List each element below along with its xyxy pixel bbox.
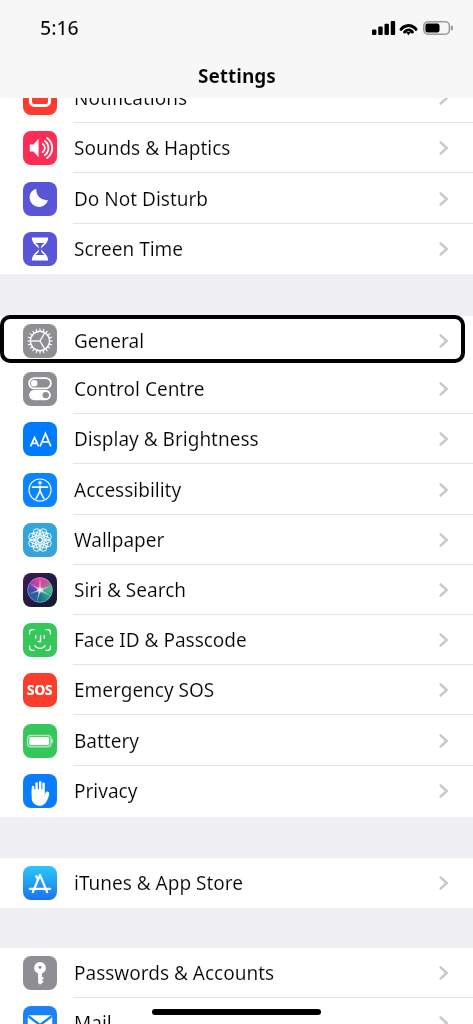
button[interactable]: Screen Time: [0, 224, 473, 274]
staticText: Sounds & Haptics: [74, 135, 231, 161]
button[interactable]: SOS: [0, 665, 473, 715]
button[interactable]: Privacy: [0, 766, 473, 816]
staticText: Siri & Search: [74, 577, 187, 603]
button[interactable]: Battery: [0, 716, 473, 766]
button[interactable]: Siri & Search: [0, 565, 473, 615]
staticText: Face ID & Passcode: [74, 627, 247, 653]
button[interactable]: Do Not Disturb: [0, 174, 473, 224]
button[interactable]: Wallpaper: [0, 515, 473, 565]
button[interactable]: Control Centre: [0, 364, 473, 414]
button[interactable]: Display & Brightness: [0, 414, 473, 464]
staticText: Settings: [198, 63, 276, 89]
staticText: Wallpaper: [74, 527, 165, 553]
button[interactable]: iTunes & App Store: [0, 858, 473, 908]
button[interactable]: Notifications: [0, 73, 473, 123]
staticText: Battery: [74, 728, 139, 754]
button[interactable]: Sounds & Haptics: [0, 123, 473, 173]
staticText: Accessibility: [74, 477, 182, 503]
button[interactable]: General: [0, 316, 473, 366]
staticText: Do Not Disturb: [74, 186, 209, 212]
staticText: Notifications: [74, 85, 188, 111]
staticText: iTunes & App Store: [74, 870, 244, 896]
button[interactable]: Accessibility: [0, 465, 473, 515]
button[interactable]: Mail: [0, 998, 473, 1024]
staticText: Emergency SOS: [74, 677, 215, 703]
staticText: Privacy: [74, 778, 138, 804]
staticText: SOS: [27, 681, 53, 699]
staticText: Mail: [74, 1010, 112, 1024]
staticText: Display & Brightness: [74, 426, 259, 452]
staticText: Passwords & Accounts: [74, 960, 275, 986]
button[interactable]: Passwords & Accounts: [0, 948, 473, 998]
staticText: Control Centre: [74, 376, 205, 402]
staticText: Screen Time: [74, 236, 184, 262]
button[interactable]: Face ID & Passcode: [0, 615, 473, 665]
staticText: 5:16: [40, 14, 79, 41]
staticText: General: [74, 328, 145, 354]
